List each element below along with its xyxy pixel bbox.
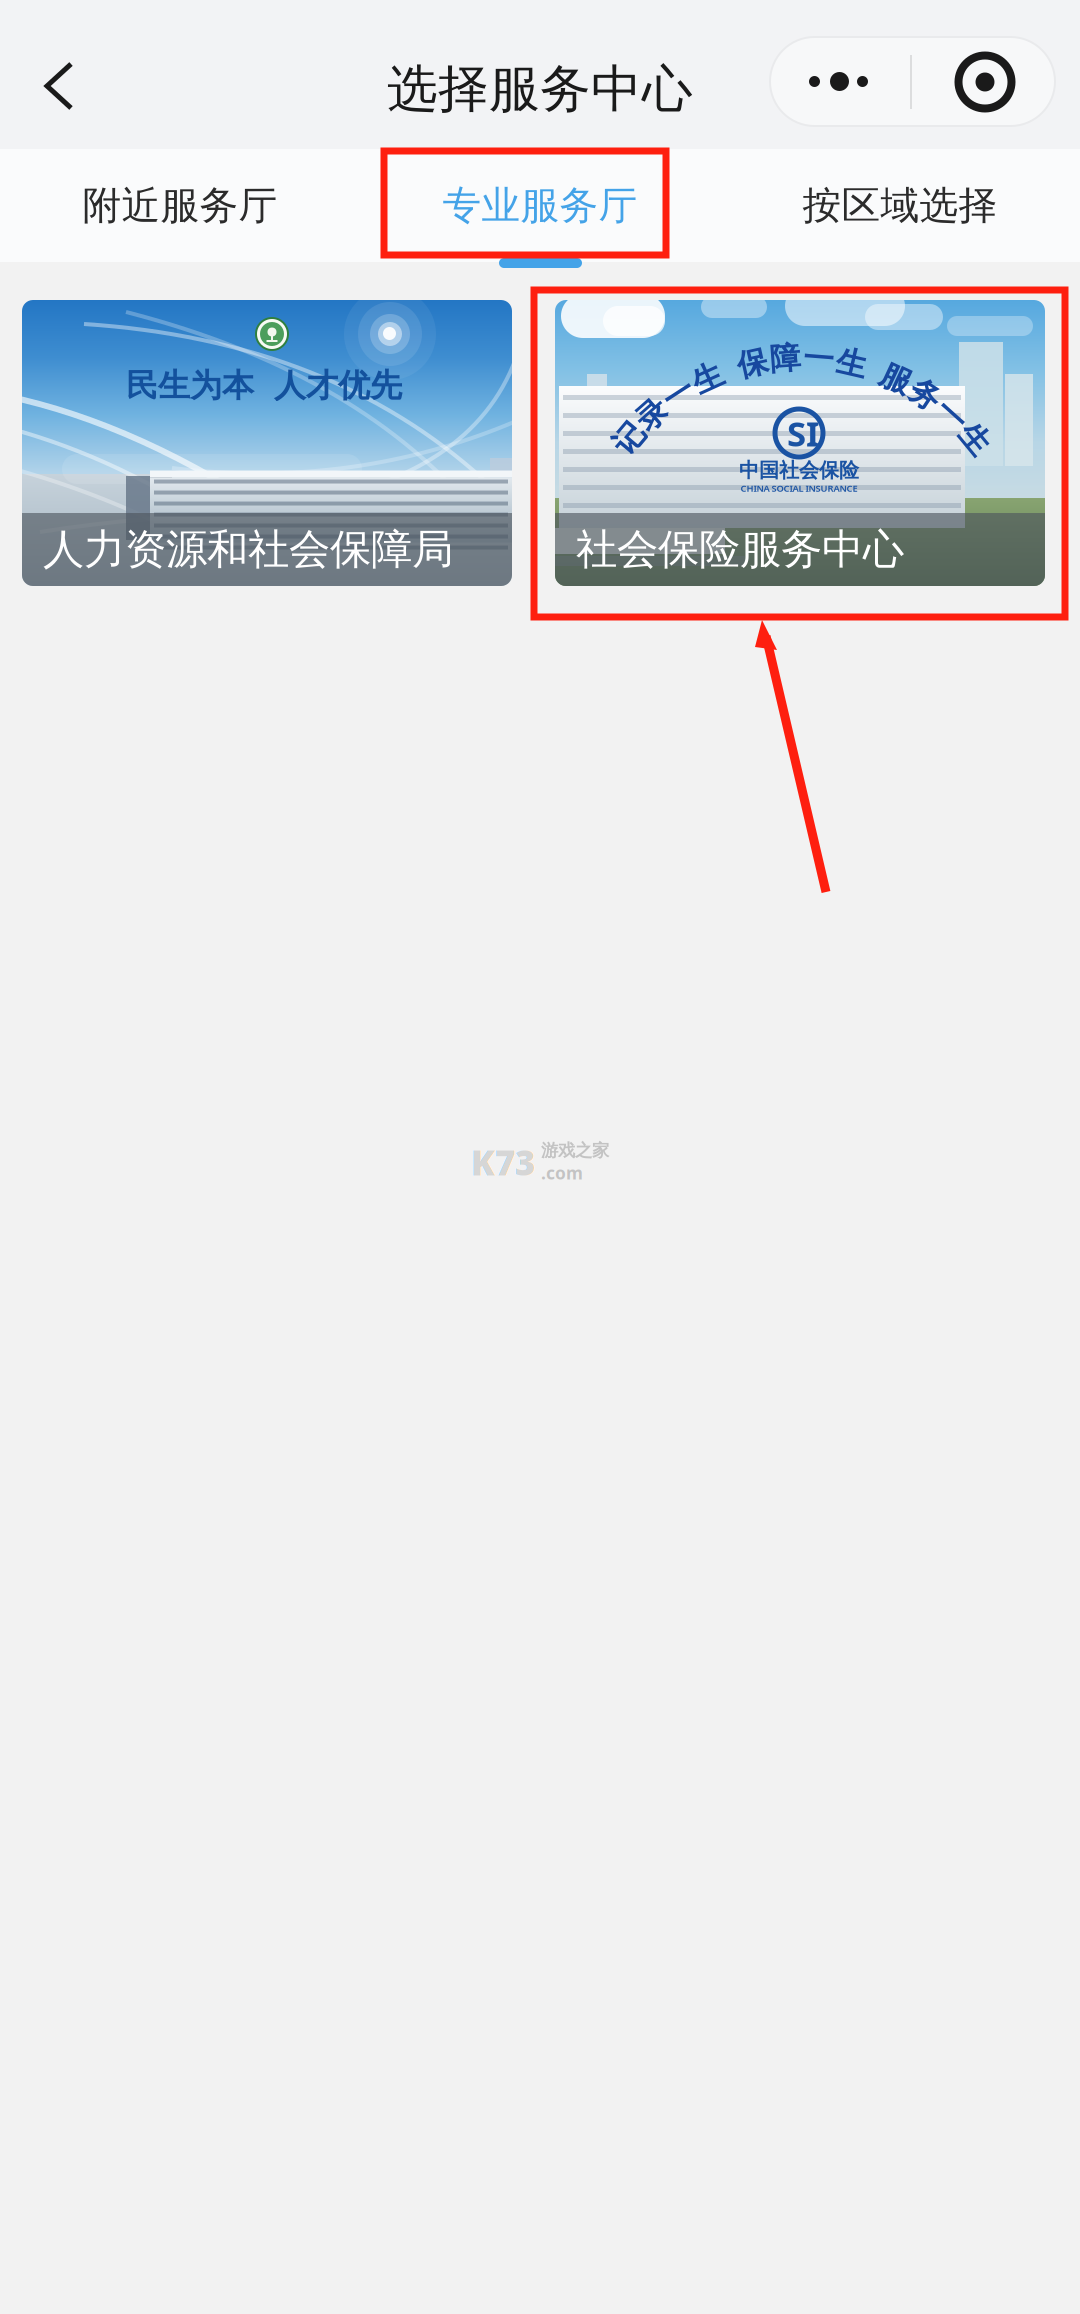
staticText: 记 xyxy=(613,419,644,457)
staticText: 保 xyxy=(737,344,768,382)
staticText: 务 xyxy=(910,376,941,414)
staticText: 选择服务中心 xyxy=(387,58,693,120)
staticText: .com xyxy=(541,1161,583,1184)
button[interactable]: 记 xyxy=(555,300,1045,586)
staticText: 人力资源和社会保障局 xyxy=(43,524,453,575)
button[interactable]: 附近服务厅 xyxy=(0,149,360,262)
staticText: 生 xyxy=(692,359,723,397)
button[interactable]: More options xyxy=(770,37,1055,126)
staticText: 一 xyxy=(663,375,694,413)
staticText: 社会保险服务中心 xyxy=(576,524,904,575)
staticText: 一 xyxy=(936,397,967,435)
staticText: 附近服务厅 xyxy=(82,182,277,229)
staticText: 生 xyxy=(959,421,990,459)
staticText: 按区域选择 xyxy=(802,182,997,229)
staticText: 障 xyxy=(770,340,801,377)
button[interactable]: 专业服务厅 xyxy=(360,149,720,262)
staticText: 生 xyxy=(836,345,867,383)
staticText: SI xyxy=(787,410,819,456)
staticText: 一 xyxy=(803,340,834,378)
staticText: 录 xyxy=(636,396,667,433)
button[interactable]: 按区域选择 xyxy=(720,149,1080,262)
staticText: 游戏之家 xyxy=(541,1140,609,1161)
staticText: K73 xyxy=(471,1139,535,1185)
button[interactable]: Back xyxy=(14,47,100,117)
staticText: 服 xyxy=(881,360,912,398)
staticText: 专业服务厅 xyxy=(442,182,637,229)
staticText: 中国社会保险 xyxy=(739,458,859,483)
button[interactable]: 民生为本 人才优先 xyxy=(22,300,512,586)
staticText: K73 xyxy=(471,1139,535,1185)
staticText: 民生为本 人才优先 xyxy=(126,366,402,405)
staticText: CHINA SOCIAL INSURANCE xyxy=(740,482,857,494)
